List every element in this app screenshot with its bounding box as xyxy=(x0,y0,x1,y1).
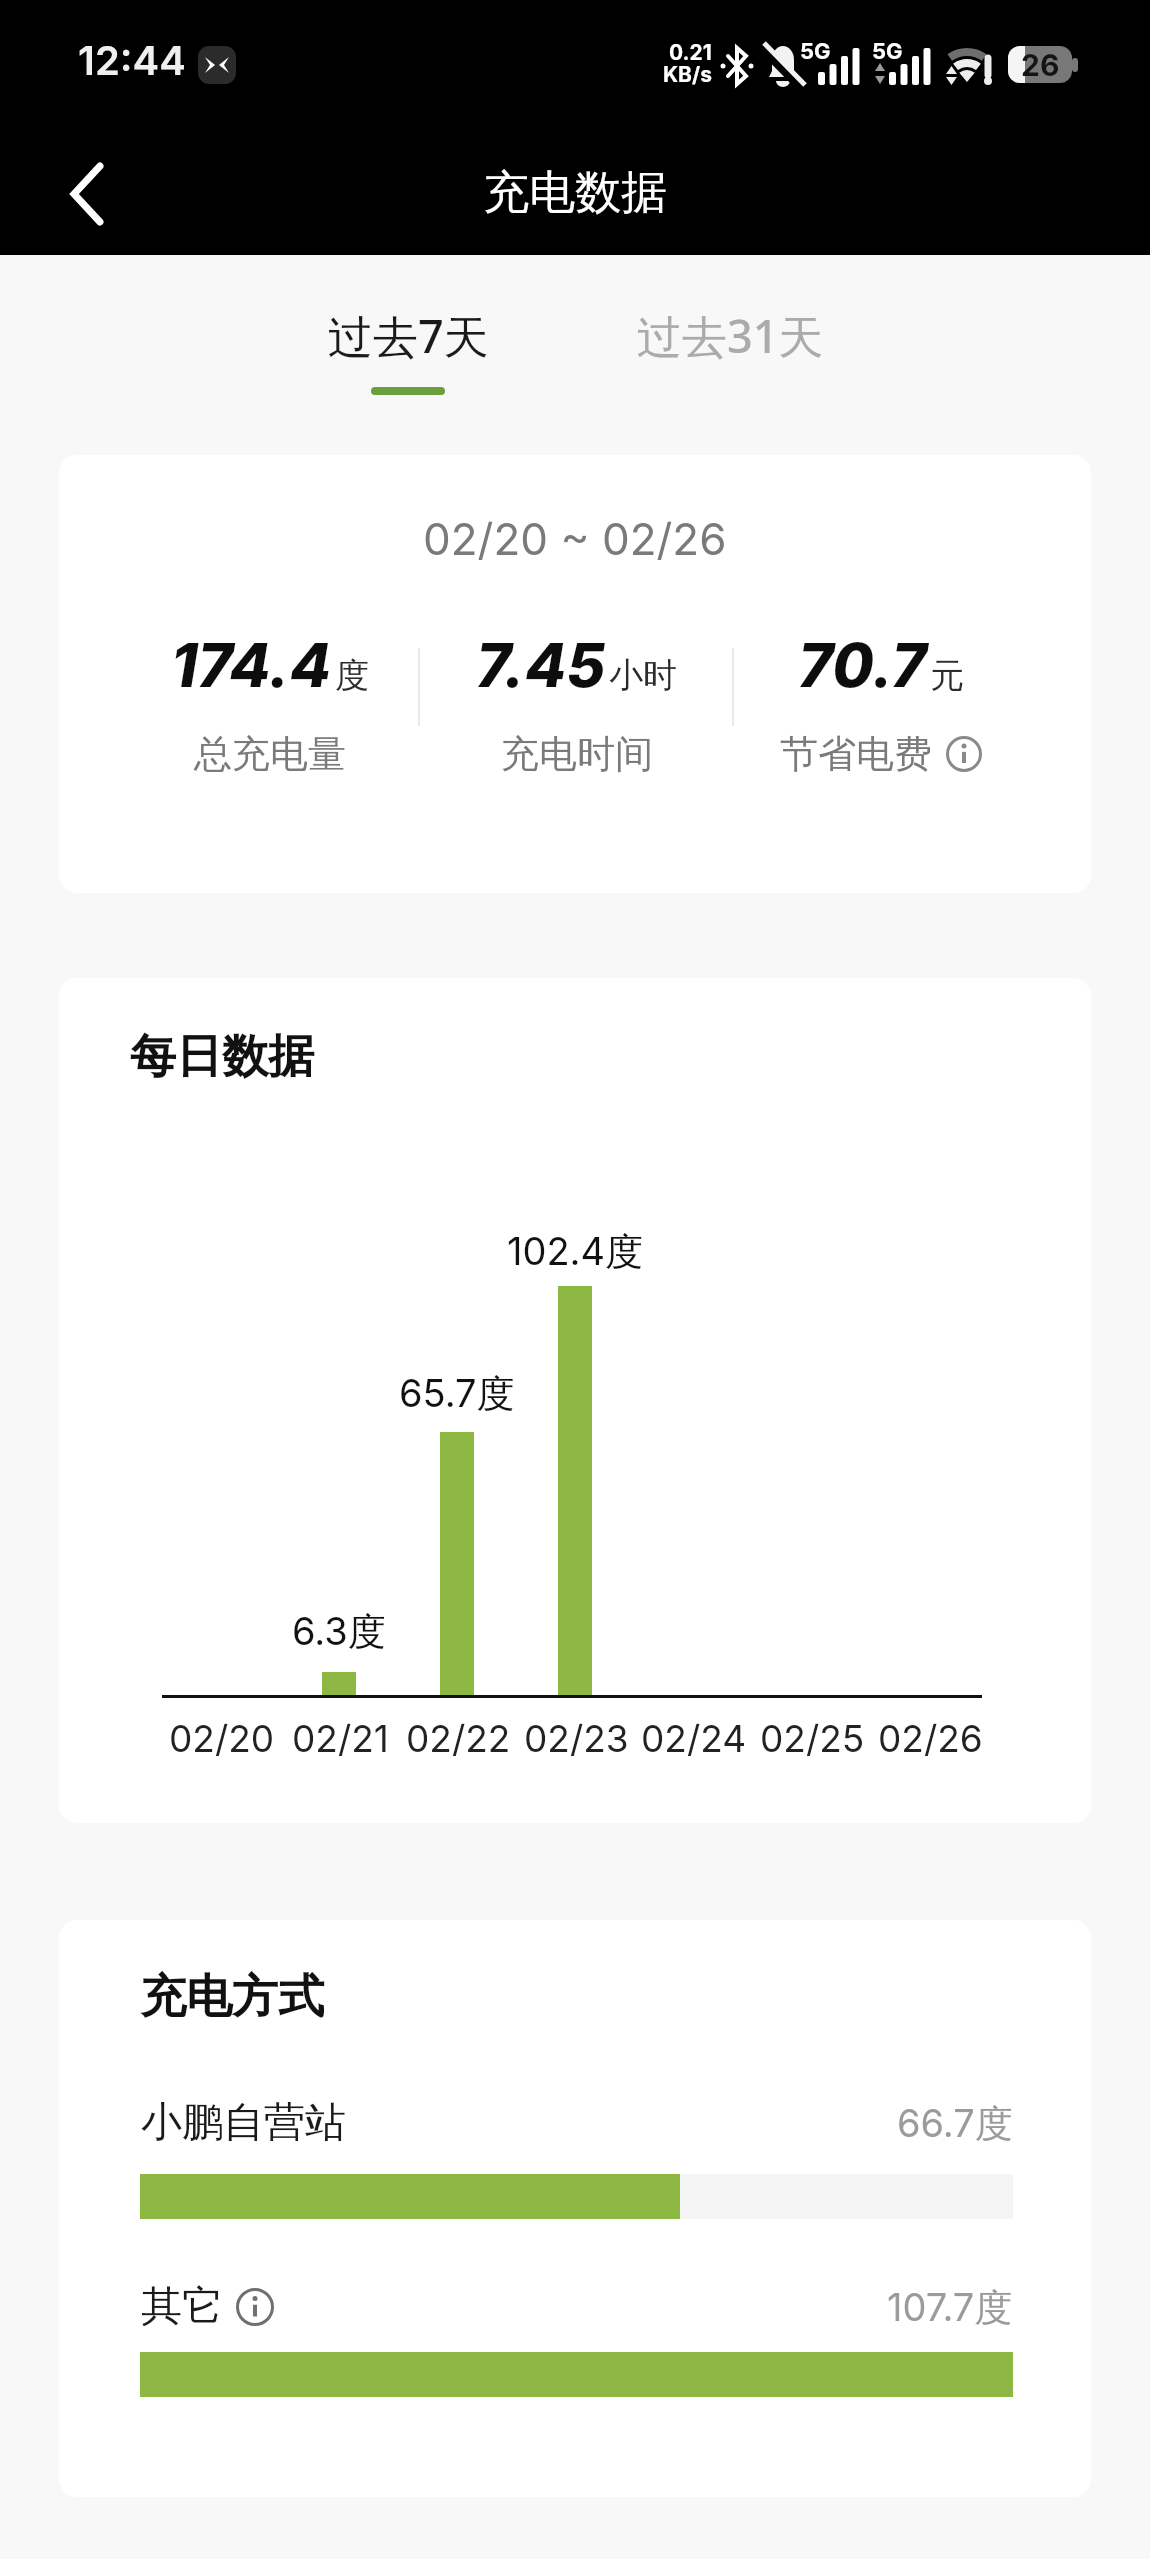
button[interactable]: 过去7天 xyxy=(288,300,528,410)
staticText: 02/21 xyxy=(292,1716,389,1761)
staticText: 过去7天 xyxy=(328,305,489,361)
staticText: 总充电量 xyxy=(194,730,346,778)
staticText: 其它 xyxy=(141,2281,223,2333)
staticText: 70.7 元 xyxy=(798,629,965,702)
staticText: 充电数据 xyxy=(483,164,667,222)
button[interactable] xyxy=(946,736,982,772)
staticText: 5G xyxy=(800,38,831,65)
staticText: 02/22 xyxy=(406,1716,511,1761)
staticText: 小鹏自营站 xyxy=(141,2097,346,2149)
button[interactable] xyxy=(48,150,138,240)
staticText: 02/20 ~ 02/26 xyxy=(423,512,727,565)
staticText: 02/23 xyxy=(524,1716,629,1761)
staticText: 0.21 xyxy=(669,40,712,64)
staticText: 充电时间 xyxy=(501,730,653,778)
staticText: 过去31天 xyxy=(637,305,824,361)
staticText: 65.7度 xyxy=(399,1370,515,1418)
staticText: 5G xyxy=(872,38,903,65)
staticText: 6.3度 xyxy=(292,1608,386,1656)
staticText: 节省电费 xyxy=(780,730,932,778)
button[interactable]: 过去31天 xyxy=(595,300,865,410)
staticText: 12:44 xyxy=(78,36,186,84)
staticText: 26 xyxy=(1021,47,1060,83)
staticText: 02/24 xyxy=(641,1716,747,1761)
button[interactable] xyxy=(236,2288,274,2326)
staticText: 66.7度 xyxy=(897,2100,1013,2148)
staticText: 02/26 xyxy=(878,1716,983,1761)
staticText: 107.7度 xyxy=(887,2284,1013,2332)
staticText: 充电方式 xyxy=(140,1968,324,2026)
staticText: 174.4 度 xyxy=(171,629,369,702)
staticText: 02/25 xyxy=(760,1716,865,1761)
staticText: 7.45 小时 xyxy=(476,629,678,702)
staticText: KB/s xyxy=(663,62,712,86)
staticText: 102.4度 xyxy=(507,1228,644,1276)
staticText: 每日数据 xyxy=(130,1028,314,1086)
staticText: 02/20 xyxy=(169,1716,275,1761)
